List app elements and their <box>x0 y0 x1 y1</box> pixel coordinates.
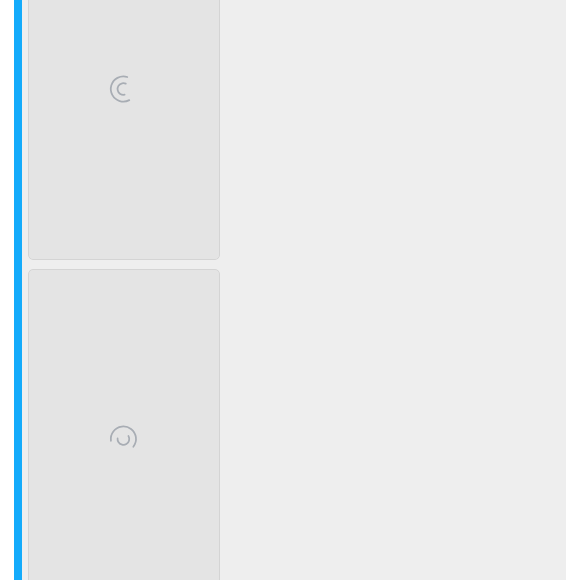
button[interactable]: Loading item 1 <box>28 0 220 260</box>
button[interactable]: Loading item 2 <box>28 269 220 580</box>
